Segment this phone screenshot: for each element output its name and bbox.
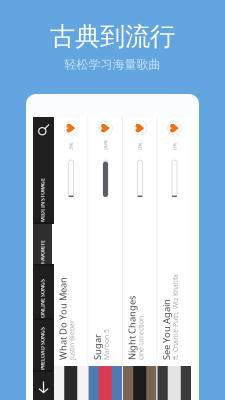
staticText: ♥ [169, 121, 180, 135]
staticText: ft. Charlie Puth, Wiz Khalifa [129, 310, 215, 318]
staticText: ♥ [134, 121, 145, 135]
staticText: ♥ [100, 121, 111, 135]
button[interactable]: ♥ [157, 117, 191, 400]
staticText: Sugar [51, 308, 77, 320]
button[interactable]: MIDI IN STORAGE [33, 143, 54, 222]
staticText: 0% [134, 140, 141, 148]
button[interactable]: ♥ [54, 117, 87, 400]
staticText: 0% [168, 140, 175, 148]
staticText: What Do You Mean [17, 308, 100, 320]
button[interactable]: ♥ [88, 117, 122, 400]
staticText: 3% [65, 140, 72, 148]
staticText: 轻松学习海量歌曲 [64, 57, 160, 72]
button[interactable]: ONLINE SONGS [33, 266, 54, 318]
button[interactable]: Search [33, 117, 54, 143]
staticText: Maroon 5 [60, 310, 91, 318]
staticText: PRELOAD SONGS [17, 341, 60, 349]
staticText: See You Again [120, 308, 181, 320]
staticText: Night Changes [86, 308, 150, 320]
button[interactable]: FAVORITE [33, 224, 54, 264]
staticText: ♥ [65, 121, 76, 135]
staticText: Justin Bieber [26, 310, 66, 318]
staticText: One Direction [95, 310, 139, 318]
staticText: 96% [99, 140, 109, 148]
staticText: MIDI IN STORAGE [3, 179, 47, 186]
button[interactable]: Download [33, 372, 54, 400]
staticText: 古典到流行 [50, 21, 175, 52]
staticText: ONLINE SONGS [16, 288, 55, 296]
staticText: FAVORITE [22, 240, 46, 248]
button[interactable]: PRELOAD SONGS [33, 320, 54, 370]
button[interactable]: ♥ [123, 117, 156, 400]
